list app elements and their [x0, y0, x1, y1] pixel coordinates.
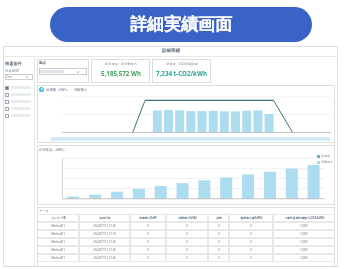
staticText: 2024/07/12 12:10	[93, 232, 116, 236]
staticText: Method01	[51, 256, 65, 260]
staticText: 5,000	[300, 240, 308, 244]
button[interactable]: Method01	[37, 230, 335, 238]
staticText: 0	[186, 256, 188, 260]
staticText: 積算電力量[kWh]	[240, 216, 263, 220]
staticText: 0	[218, 248, 220, 252]
staticText: 発電電力[kW]	[139, 216, 157, 220]
button[interactable]: Method01	[37, 238, 335, 246]
staticText: 詳細実績画面	[130, 14, 232, 35]
staticText: 取得日時	[99, 216, 111, 220]
staticText: 状態	[216, 216, 222, 220]
staticText: 日別	[6, 75, 13, 79]
staticText: 0	[250, 224, 252, 228]
staticText: 5,185,572 Wh	[101, 69, 141, 77]
staticText: 5,000	[300, 248, 308, 252]
staticText: 0	[218, 224, 220, 228]
button[interactable]	[5, 84, 33, 91]
button[interactable]	[5, 91, 33, 98]
staticText: 検索条件	[5, 61, 22, 66]
staticText: 0	[186, 248, 188, 252]
staticText: 0	[186, 232, 188, 236]
staticText: 二酸化炭素削減量 [t-CO2/kWh]	[284, 216, 325, 220]
button[interactable]: Method01	[37, 246, 335, 254]
staticText: 2024/07/12 12:30	[93, 248, 116, 252]
staticText: センサーID	[51, 216, 66, 220]
button[interactable]: 詳細実績画面	[50, 7, 312, 42]
staticText: 発電量・CO2削減効果	[166, 62, 198, 66]
staticText: 0	[147, 248, 149, 252]
staticText: 0	[218, 240, 220, 244]
button[interactable]: Method01	[37, 222, 335, 230]
staticText: 月別実績（kWh）	[39, 147, 67, 152]
staticText: 0	[186, 224, 188, 228]
staticText: 0	[147, 256, 149, 260]
staticText: 0	[250, 232, 252, 236]
staticText: 拠点	[39, 61, 47, 66]
staticText: 5,000	[300, 224, 308, 228]
button[interactable]: 総発電量・総消費電力	[91, 59, 150, 83]
staticText: 消費電力	[321, 160, 333, 164]
staticText: 0	[186, 240, 188, 244]
staticText: 2024/07/12 12:00	[93, 224, 116, 228]
button[interactable]	[5, 105, 33, 112]
staticText: 0	[147, 240, 149, 244]
staticText: 0	[218, 232, 220, 236]
staticText: 発電量	[321, 154, 330, 158]
button[interactable]: 日別	[5, 74, 33, 80]
staticText: データ	[39, 209, 49, 213]
staticText: Method01	[51, 232, 65, 236]
button[interactable]	[5, 112, 33, 119]
staticText: 総発電量・総消費電力	[105, 62, 137, 66]
button[interactable]: Info	[39, 87, 44, 92]
staticText: 消費電力[kVA]	[178, 216, 197, 220]
staticText: 0	[250, 248, 252, 252]
staticText: 5,000	[300, 232, 308, 236]
staticText: 7,234 t-CO2/kWh	[156, 69, 207, 77]
staticText: 5,000	[300, 256, 308, 260]
staticText: 0	[147, 232, 149, 236]
button[interactable]	[39, 68, 87, 75]
staticText: ?	[41, 88, 43, 92]
staticText: Method01	[51, 240, 65, 244]
staticText: Method01	[51, 248, 65, 252]
button[interactable]: Method01	[37, 254, 335, 262]
staticText: 0	[147, 224, 149, 228]
staticText: 詳細実績	[162, 48, 180, 54]
staticText: Method01	[51, 224, 65, 228]
staticText: 2024/07/12 12:40	[93, 256, 116, 260]
button[interactable]: 発電量・CO2削減効果	[152, 59, 211, 83]
staticText: 発電量（kWh）・消費電力	[46, 87, 87, 92]
staticText: 0	[218, 256, 220, 260]
staticText: 0	[250, 256, 252, 260]
staticText: 対象期間	[5, 69, 19, 73]
staticText: 2024/07/12 12:20	[93, 240, 116, 244]
button[interactable]	[5, 98, 33, 105]
staticText: 0	[250, 240, 252, 244]
